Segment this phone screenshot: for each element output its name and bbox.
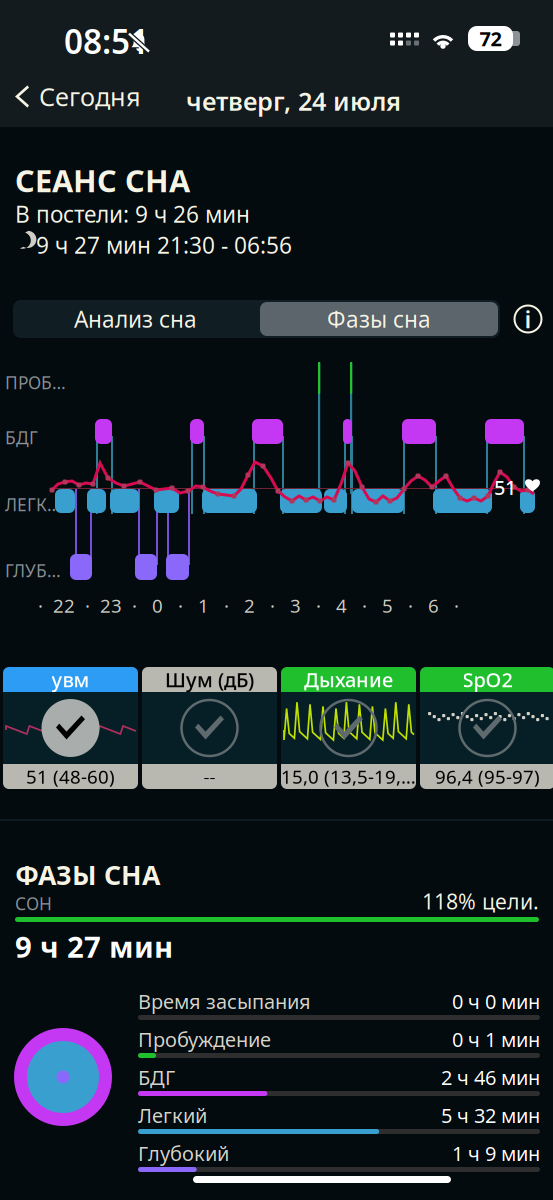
staticText: i [524, 303, 531, 335]
staticText: 2 ч 46 мин [441, 1064, 540, 1091]
staticText: Дыхание [304, 666, 393, 693]
button[interactable]: Сегодня [0, 66, 151, 127]
staticText: 96,4 (95-97) [435, 764, 540, 789]
staticText: ФАЗЫ СНА [15, 857, 160, 892]
staticText: 1 ч 9 мин [452, 1140, 540, 1167]
button[interactable]: SpO2 [420, 667, 553, 789]
staticText: 51 (48-60) [26, 764, 115, 789]
staticText: Анализ сна [74, 304, 197, 334]
button[interactable]: увм [3, 667, 138, 789]
staticText: Сегодня [39, 80, 141, 113]
button[interactable]: Шум (дБ) [142, 667, 277, 789]
staticText: ГЛУБ… [5, 559, 61, 582]
staticText: 5 ч 32 мин [441, 1102, 540, 1129]
staticText: 9 ч 27 мин 21:30 - 06:56 [36, 230, 292, 260]
staticText: ПРОБ… [5, 371, 66, 394]
button[interactable]: Анализ сна [13, 300, 258, 338]
staticText: Легкий [138, 1102, 207, 1129]
staticText: -- [203, 764, 215, 789]
button[interactable]: Дыхание [281, 667, 416, 789]
staticText: БДГ [5, 426, 38, 449]
button[interactable]: Информация [511, 302, 545, 336]
staticText: 08:51 [64, 19, 149, 63]
staticText: СОН [15, 892, 52, 915]
button[interactable]: Фазы сна [260, 302, 498, 336]
staticText: БДГ [138, 1064, 175, 1091]
staticText: 9 ч 27 мин [15, 927, 173, 966]
staticText: Фазы сна [327, 304, 431, 334]
staticText: 72 [479, 25, 501, 52]
staticText: В постели: 9 ч 26 мин [15, 199, 250, 229]
staticText: 51 [494, 474, 516, 501]
staticText: четверг, 24 июля [186, 84, 401, 118]
staticText: 118% цели. [422, 887, 539, 915]
staticText: Глубокий [138, 1140, 229, 1167]
staticText: СЕАНС СНА [15, 160, 190, 201]
staticText: · 22 · 23 · 0 · 1 · 2 · 3 · 4 · 5 · 6 · [38, 593, 459, 618]
staticText: 0 ч 1 мин [452, 1026, 540, 1053]
staticText: увм [51, 666, 89, 693]
staticText: Шум (дБ) [165, 666, 254, 693]
staticText: Время засыпания [138, 988, 311, 1015]
staticText: SpO2 [462, 666, 512, 693]
staticText: 0 ч 0 мин [452, 988, 540, 1015]
staticText: Пробуждение [138, 1026, 271, 1053]
staticText: ЛЕГК… [5, 493, 61, 516]
staticText: 15,0 (13,5-19,0) [281, 764, 416, 789]
